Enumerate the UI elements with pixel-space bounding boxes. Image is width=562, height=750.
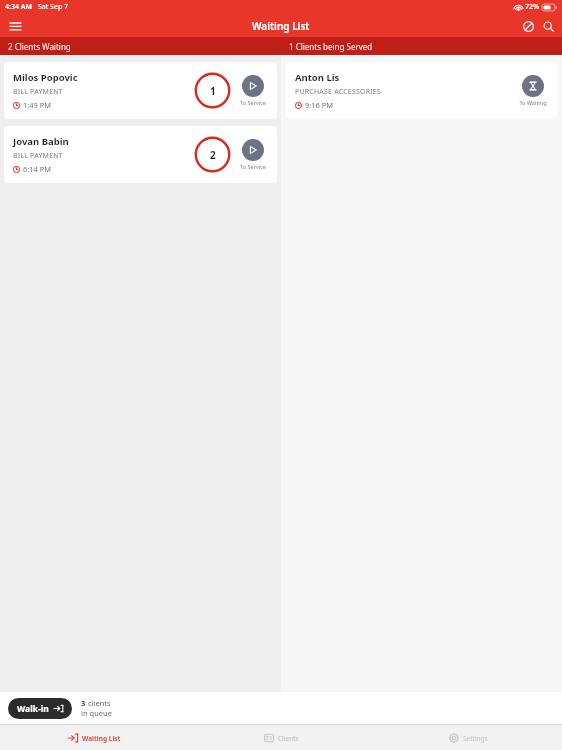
staticText: PURCHASE ACCESSORIES	[295, 87, 381, 97]
staticText: Clients	[278, 734, 299, 743]
staticText: 2	[210, 148, 216, 162]
staticText: Waiting List	[252, 19, 310, 33]
staticText: To Waiting	[519, 99, 547, 106]
button[interactable]: Milos Popovic	[4, 62, 277, 119]
button[interactable]: To Waiting	[516, 75, 550, 106]
staticText: 72%	[525, 2, 540, 12]
staticText: Settings	[463, 734, 488, 743]
button[interactable]: To Service	[236, 139, 270, 170]
staticText: Waiting List	[82, 734, 121, 743]
staticText: 1	[210, 84, 216, 98]
staticText: To Service	[240, 163, 266, 170]
staticText: Anton Lis	[295, 71, 340, 84]
staticText: 1 Clients being Served	[289, 41, 373, 52]
staticText: BILL PAYMENT	[13, 87, 63, 97]
staticText: Milos Popovic	[13, 71, 78, 84]
button[interactable]: Clients	[188, 725, 375, 750]
staticText: Walk-in	[17, 703, 49, 715]
staticText: in queue	[81, 708, 112, 718]
staticText: Jovan Babin	[13, 135, 69, 148]
button[interactable]: Settings	[375, 725, 562, 750]
staticText: To Service	[240, 99, 266, 106]
button[interactable]: Search	[538, 16, 558, 36]
button[interactable]: Waiting List	[0, 725, 188, 750]
button[interactable]: Anton Lis	[286, 62, 557, 119]
button[interactable]: Menu	[4, 15, 26, 37]
button[interactable]: To Service	[236, 75, 270, 106]
staticText: Sat Sep 7	[38, 2, 69, 12]
staticText: clients	[88, 698, 111, 708]
staticText: 2 Clients Waiting	[8, 41, 71, 52]
staticText: 4:34 AM	[5, 2, 32, 12]
button[interactable]: Jovan Babin	[4, 126, 277, 183]
button[interactable]: Walk-in	[8, 698, 72, 719]
staticText: 1:49 PM	[23, 100, 52, 110]
staticText: BILL PAYMENT	[13, 151, 63, 161]
staticText: 9:16 PM	[305, 100, 334, 110]
staticText: 6:14 PM	[23, 164, 52, 174]
staticText: 3	[81, 698, 86, 708]
button[interactable]: Pause queue	[518, 16, 538, 36]
